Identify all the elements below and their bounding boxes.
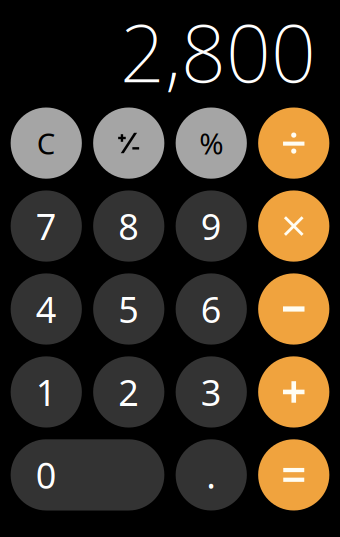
staticText: 9 xyxy=(201,202,222,250)
button[interactable]: Add xyxy=(258,356,329,428)
button[interactable]: 0 xyxy=(11,439,164,510)
staticText: 8 xyxy=(118,202,139,250)
button[interactable]: % xyxy=(176,107,247,179)
button[interactable]: C xyxy=(11,107,82,179)
staticText: % xyxy=(199,124,223,163)
button[interactable]: 2 xyxy=(93,356,164,428)
button[interactable]: 7 xyxy=(11,190,82,262)
button[interactable]: 9 xyxy=(176,190,247,262)
button[interactable]: Multiply xyxy=(258,190,329,262)
staticText: 2,800 xyxy=(120,0,316,104)
staticText: 2 xyxy=(118,368,139,416)
staticText: C xyxy=(37,124,56,163)
button[interactable]: 1 xyxy=(11,356,82,428)
staticText: 1 xyxy=(36,368,57,416)
staticText: 7 xyxy=(36,202,57,250)
button[interactable]: 5 xyxy=(93,273,164,345)
staticText: 5 xyxy=(118,285,139,333)
button[interactable]: 8 xyxy=(93,190,164,262)
staticText: 3 xyxy=(201,368,222,416)
button[interactable]: Equals xyxy=(258,439,329,510)
button[interactable]: Subtract xyxy=(258,273,329,345)
button[interactable]: 6 xyxy=(176,273,247,345)
staticText: 6 xyxy=(201,285,222,333)
button[interactable]: Toggle sign xyxy=(93,107,164,179)
staticText: 4 xyxy=(36,285,57,333)
button[interactable]: . xyxy=(176,439,247,510)
button[interactable]: 4 xyxy=(11,273,82,345)
button[interactable]: 3 xyxy=(176,356,247,428)
staticText: . xyxy=(206,451,216,499)
button[interactable]: Divide xyxy=(258,107,329,179)
staticText: 0 xyxy=(36,451,57,499)
